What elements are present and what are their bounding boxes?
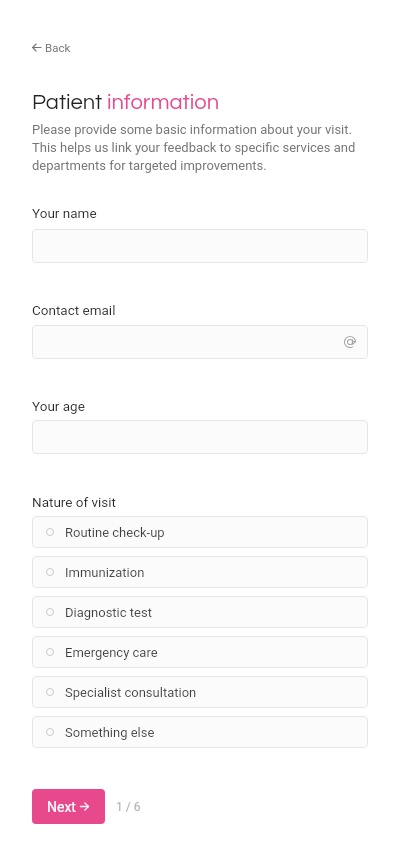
button[interactable]: Something else (32, 716, 368, 748)
staticText: Next (47, 799, 76, 815)
staticText: Diagnostic test (65, 605, 152, 620)
staticText: Back (45, 41, 71, 54)
button[interactable]: Diagnostic test (32, 596, 368, 628)
staticText: Something else (65, 725, 155, 740)
staticText: Your name (32, 205, 97, 221)
button[interactable]: Routine check-up (32, 516, 368, 548)
staticText: Routine check-up (65, 525, 165, 540)
staticText: Specialist consultation (65, 685, 197, 700)
other: Back (32, 43, 41, 52)
staticText: Contact email (32, 302, 116, 318)
button[interactable]: Specialist consultation (32, 676, 368, 708)
button[interactable] (32, 420, 368, 454)
button[interactable]: Emergency care (32, 636, 368, 668)
staticText: Emergency care (65, 645, 158, 660)
button[interactable]: Next (32, 789, 105, 824)
button[interactable]: Email (32, 325, 368, 359)
staticText: Please provide some basic information ab… (32, 122, 368, 173)
staticText: Patient information (32, 91, 220, 114)
staticText: 1 / 6 (116, 800, 141, 814)
other: Email (343, 335, 357, 349)
button[interactable]: Back (32, 41, 71, 54)
button[interactable] (32, 229, 368, 263)
button[interactable]: Immunization (32, 556, 368, 588)
staticText: Nature of visit (32, 494, 117, 510)
staticText: Immunization (65, 565, 145, 580)
staticText: Your age (32, 398, 85, 414)
